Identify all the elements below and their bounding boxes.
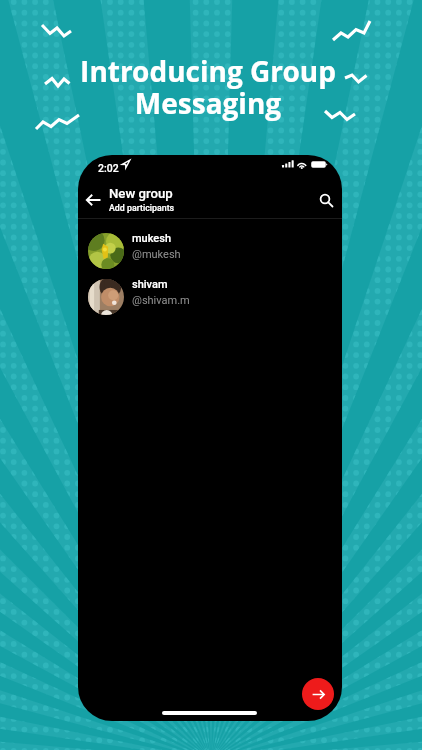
button[interactable]: Search	[311, 185, 341, 215]
staticText: shivam	[132, 278, 168, 291]
staticText: @shivam.m	[132, 294, 190, 307]
staticText: New group	[109, 186, 173, 201]
staticText: 2:02	[98, 162, 119, 174]
staticText: Introducing Group Messaging	[80, 52, 336, 122]
staticText: @mukesh	[132, 248, 181, 261]
button[interactable]: mukesh	[78, 228, 342, 274]
button[interactable]: shivam	[78, 274, 342, 320]
button[interactable]: Next	[302, 678, 334, 710]
staticText: mukesh	[132, 232, 172, 245]
button[interactable]: Back	[78, 185, 108, 215]
staticText: Add participants	[109, 203, 175, 213]
